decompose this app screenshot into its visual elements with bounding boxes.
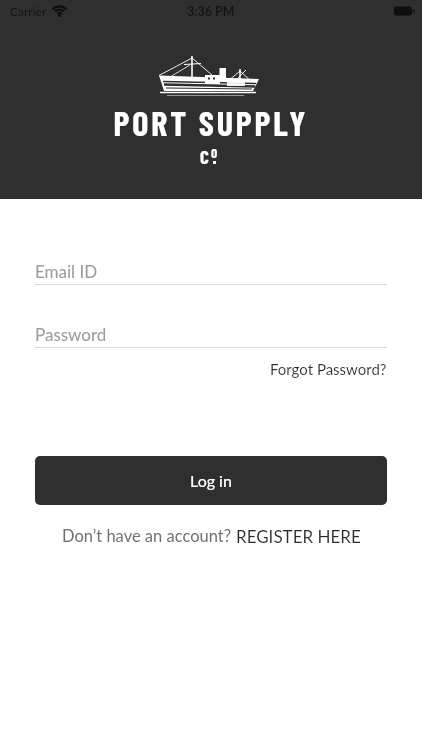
- staticText: O: [211, 145, 218, 161]
- staticText: Log in: [190, 471, 232, 490]
- staticText: Password: [35, 324, 107, 344]
- staticText: Email ID: [35, 261, 98, 281]
- button[interactable]: REGISTER HERE: [236, 526, 361, 546]
- staticText: Forgot Password?: [270, 360, 387, 378]
- staticText: 3:36 PM: [187, 4, 235, 19]
- staticText: C: [200, 145, 209, 168]
- staticText: PORT SUPPLY: [0, 102, 422, 143]
- staticText: Don’t have an account?: [62, 526, 236, 546]
- button[interactable]: Log in: [35, 456, 387, 505]
- button[interactable]: Password: [35, 318, 387, 348]
- staticText: Carrier: [10, 4, 47, 18]
- staticText: REGISTER HERE: [236, 526, 361, 546]
- button[interactable]: Email ID: [35, 255, 387, 285]
- button[interactable]: Forgot Password?: [270, 360, 387, 378]
